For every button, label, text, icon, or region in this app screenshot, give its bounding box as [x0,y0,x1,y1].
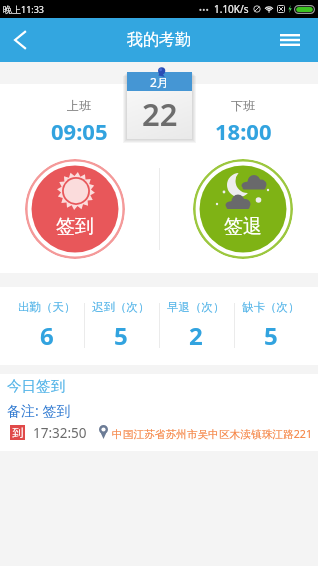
button[interactable]: Menu [274,18,318,62]
button[interactable]: 缺卡（次） [233,287,308,365]
button[interactable]: 签退 [193,159,293,259]
staticText: 缺卡（次） [242,300,300,314]
button[interactable]: 今日签到 [0,374,318,451]
button[interactable]: 迟到（次） [84,287,158,365]
staticText: 17:32:50 [33,424,87,442]
staticText: 晚上11:33 [3,3,45,15]
staticText: 下班 [231,98,255,113]
staticText: 6 [40,319,54,352]
staticText: 中国江苏省苏州市吴中区木渎镇珠江路221 [112,427,313,442]
button[interactable]: Back [0,18,42,62]
staticText: 迟到（次） [92,300,150,314]
staticText: 09:05 [51,116,108,146]
staticText: 签到 [45,215,105,239]
staticText: 签退 [213,215,273,239]
button[interactable]: 签到 [25,159,125,259]
button[interactable]: 出勤（天） [10,287,84,365]
staticText: 2 [189,319,203,352]
staticText: 我的考勤 [127,30,191,50]
button[interactable]: 早退（次） [158,287,233,365]
staticText: 5 [114,319,128,352]
staticText: 18:00 [215,116,272,146]
staticText: 备注: 签到 [7,401,71,420]
staticText: 今日签到 [7,377,65,395]
staticText: 上班 [67,98,91,113]
staticText: 早退（次） [167,300,225,314]
staticText: 5 [264,319,278,352]
staticText: 22 [142,93,178,135]
staticText: 出勤（天） [18,300,76,314]
staticText: 2月 [150,74,169,90]
staticText: 到 [12,426,23,440]
staticText: 1.10K/s [214,2,249,16]
